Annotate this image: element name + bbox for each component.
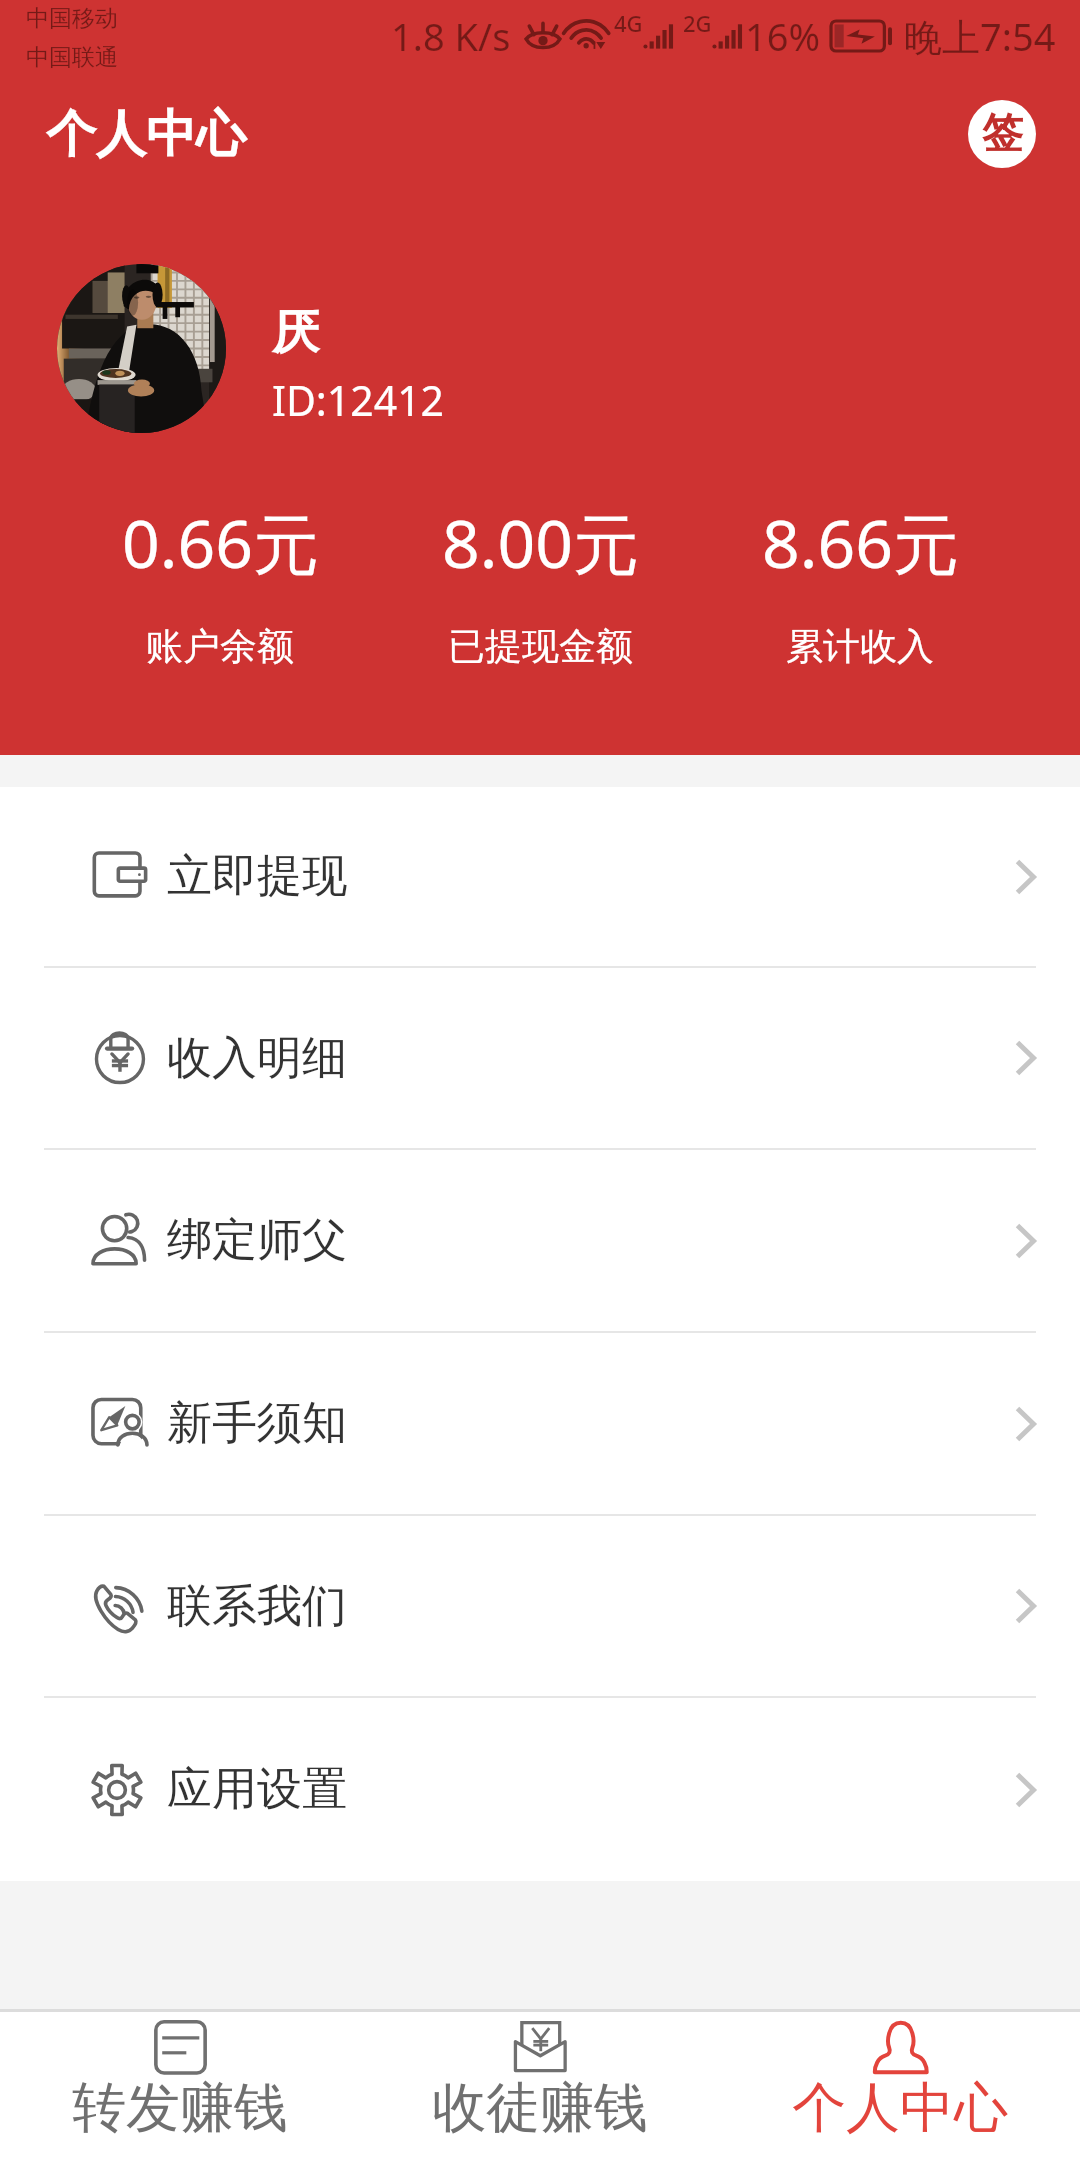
staticText: 收入明细	[167, 1030, 347, 1087]
staticText: ID:12412	[272, 372, 445, 428]
button[interactable]: 绑定师父	[0, 1150, 1080, 1331]
staticText: 4G	[614, 8, 643, 38]
staticText: 中国联通	[26, 43, 118, 72]
staticText: 2G	[683, 8, 712, 38]
button[interactable]: 收入明细	[0, 968, 1080, 1148]
button[interactable]: 厌	[0, 264, 1080, 433]
staticText: 16%	[745, 10, 821, 62]
staticText: 转发赚钱	[72, 2074, 288, 2142]
button[interactable]: 联系我们	[0, 1516, 1080, 1696]
button[interactable]: 个人中心	[720, 2012, 1080, 2160]
button[interactable]: 应用设置	[0, 1698, 1080, 1881]
staticText: 应用设置	[167, 1761, 347, 1818]
staticText: 晚上7:54	[904, 10, 1056, 62]
button[interactable]: 签到	[968, 100, 1036, 168]
staticText: 8.66元	[762, 497, 959, 587]
staticText: 个人中心	[792, 2074, 1008, 2142]
staticText: 新手须知	[167, 1395, 347, 1452]
staticText: 1.8 K/s	[391, 10, 511, 62]
staticText: 8.00元	[442, 497, 639, 587]
staticText: 签	[982, 108, 1023, 160]
staticText: 中国移动	[26, 4, 118, 33]
staticText: 累计收入	[786, 623, 934, 670]
staticText: 厌	[272, 303, 319, 362]
staticText: 个人中心	[46, 103, 246, 166]
staticText: 0.66元	[122, 497, 319, 587]
staticText: 已提现金额	[448, 623, 633, 670]
button[interactable]: 收徒赚钱	[360, 2012, 720, 2160]
staticText: 立即提现	[167, 848, 347, 905]
button[interactable]: 立即提现	[0, 787, 1080, 966]
staticText: 账户余额	[146, 623, 294, 670]
button[interactable]: 新手须知	[0, 1333, 1080, 1514]
staticText: 联系我们	[167, 1578, 347, 1635]
staticText: 绑定师父	[167, 1212, 347, 1269]
button[interactable]: 转发赚钱	[0, 2012, 360, 2160]
staticText: 收徒赚钱	[432, 2074, 648, 2142]
